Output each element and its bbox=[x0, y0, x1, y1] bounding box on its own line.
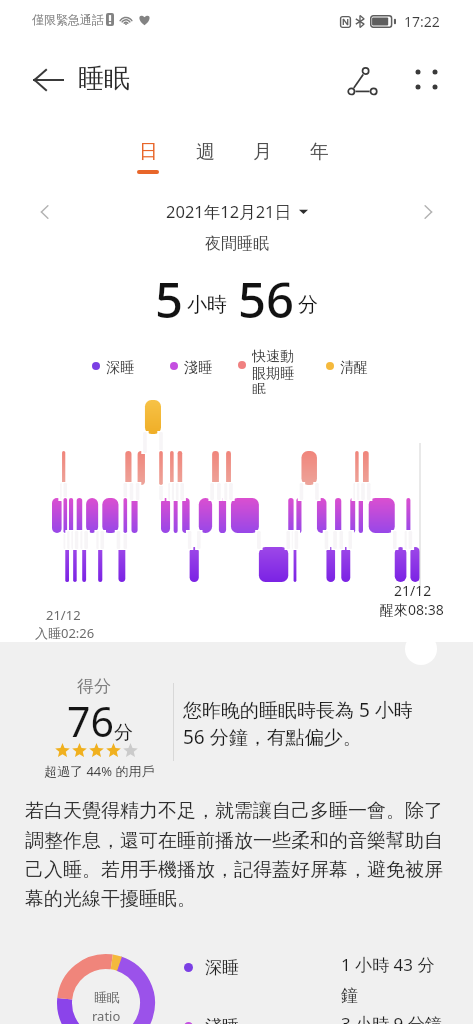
button[interactable]: Previous day bbox=[30, 197, 60, 227]
staticText: 深睡 bbox=[205, 957, 239, 978]
staticText: 21/12 bbox=[46, 606, 81, 624]
staticText: 淺睡 bbox=[184, 359, 212, 377]
staticText: 分 bbox=[298, 292, 318, 317]
staticText: 睡眠 bbox=[78, 62, 130, 95]
staticText: 月 bbox=[253, 140, 272, 164]
staticText: 1 小時 43 分鐘 bbox=[341, 953, 442, 1006]
staticText: 3 小時 9 分鐘 bbox=[341, 1012, 453, 1024]
staticText: 5 bbox=[155, 266, 184, 322]
staticText: 您昨晚的睡眠時長為 5 小時 56 分鐘，有點偏少。 bbox=[183, 697, 431, 750]
staticText: 清醒 bbox=[340, 359, 368, 377]
staticText: 小時 bbox=[187, 292, 227, 317]
staticText: 入睡02:26 bbox=[35, 624, 95, 642]
staticText: 超過了 44% 的用戶 bbox=[44, 762, 155, 780]
staticText: ratio bbox=[92, 1007, 121, 1024]
staticText: 日 bbox=[139, 140, 158, 164]
staticText: 僅限緊急通話 bbox=[32, 12, 104, 27]
button[interactable]: More options bbox=[402, 55, 450, 103]
button[interactable]: 2021年12月21日 bbox=[162, 196, 312, 227]
staticText: 2021年12月21日 bbox=[166, 200, 292, 223]
staticText: 得分 bbox=[77, 676, 111, 697]
button[interactable]: 週 bbox=[176, 137, 233, 179]
staticText: 年 bbox=[310, 140, 329, 164]
button[interactable]: 日 bbox=[119, 137, 176, 179]
staticText: 若白天覺得精力不足，就需讓自己多睡一會。除了調整作息，還可在睡前播放一些柔和的音… bbox=[25, 799, 449, 910]
staticText: 76 bbox=[67, 693, 114, 749]
button[interactable]: 年 bbox=[290, 137, 347, 179]
staticText: 分 bbox=[114, 721, 133, 745]
staticText: 淺睡 bbox=[205, 1016, 239, 1024]
staticText: 56 bbox=[238, 266, 295, 322]
button[interactable]: Share bbox=[336, 55, 388, 107]
staticText: 快速動 眼期睡 眠 bbox=[252, 348, 294, 394]
staticText: 睡眠 bbox=[94, 989, 120, 1005]
button[interactable]: Next day bbox=[413, 197, 443, 227]
button[interactable]: Scroll up bbox=[405, 633, 437, 665]
button[interactable]: 深睡 bbox=[184, 957, 239, 978]
button[interactable]: 淺睡 bbox=[184, 1016, 239, 1024]
staticText: 夜間睡眠 bbox=[205, 234, 269, 254]
staticText: 週 bbox=[196, 140, 215, 164]
staticText: 17:22 bbox=[404, 12, 440, 31]
staticText: 深睡 bbox=[106, 359, 134, 377]
staticText: 21/12 bbox=[394, 581, 432, 600]
button[interactable]: 月 bbox=[233, 137, 290, 179]
staticText: 醒來08:38 bbox=[380, 600, 444, 619]
button[interactable]: Back bbox=[19, 58, 77, 102]
